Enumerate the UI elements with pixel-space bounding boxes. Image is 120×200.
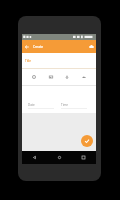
button[interactable]: Done — [81, 135, 93, 147]
staticText: Title — [25, 59, 31, 63]
button[interactable]: Back — [22, 40, 31, 53]
staticText: Time — [61, 103, 68, 107]
button[interactable]: Record audio — [61, 71, 73, 83]
button[interactable]: Title — [22, 53, 96, 68]
button[interactable]: Back — [30, 153, 39, 162]
button[interactable]: Recent apps — [79, 153, 88, 162]
staticText: Create — [33, 45, 44, 49]
button[interactable]: Save — [87, 40, 96, 53]
button[interactable]: Add location — [28, 71, 40, 83]
button[interactable]: Time — [59, 102, 96, 113]
button[interactable]: Home — [55, 153, 64, 162]
button[interactable]: Add photo — [45, 71, 57, 83]
button[interactable]: Add map — [78, 71, 90, 83]
staticText: Date — [28, 103, 35, 107]
button[interactable]: Date — [22, 102, 59, 113]
